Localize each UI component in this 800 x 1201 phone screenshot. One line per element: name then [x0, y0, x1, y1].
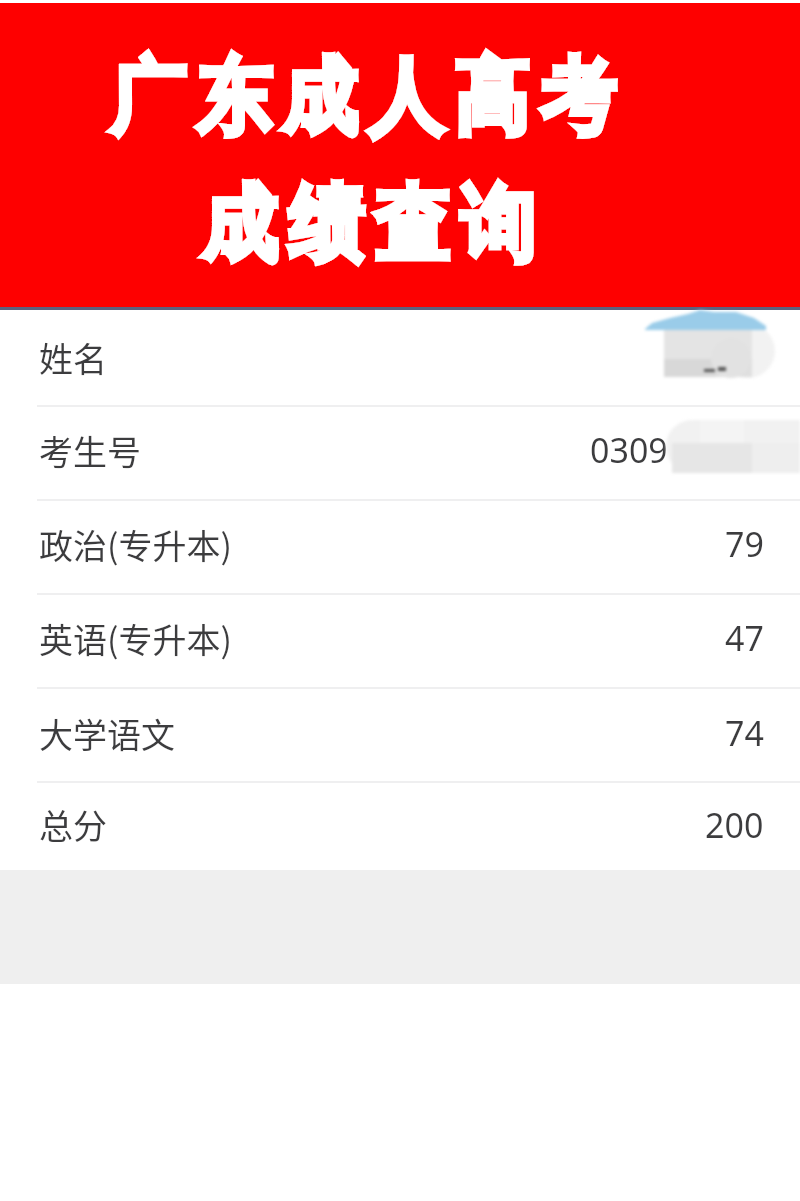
- staticText: 成绩查询: [202, 173, 547, 278]
- staticText: 广东成人高考: [110, 46, 627, 151]
- staticText: 200: [705, 802, 764, 848]
- staticText: 考生号: [39, 426, 141, 475]
- staticText: 总分: [39, 800, 107, 849]
- staticText: 74: [725, 710, 764, 756]
- staticText: 大学语文: [39, 709, 175, 758]
- staticText: 成绩查询: [202, 173, 547, 278]
- button[interactable]: 政治(专升本): [0, 501, 800, 595]
- button[interactable]: 总分: [0, 783, 800, 870]
- staticText: 79: [725, 521, 764, 567]
- staticText: 47: [725, 615, 764, 661]
- button[interactable]: 考生号: [0, 407, 800, 501]
- staticText: 政治(专升本): [39, 520, 232, 569]
- button[interactable]: 英语(专升本): [0, 595, 800, 689]
- staticText: 0309: [590, 427, 668, 473]
- staticText: 英语(专升本): [39, 614, 232, 663]
- staticText: 姓名: [39, 333, 107, 382]
- staticText: 广东成人高考: [110, 46, 627, 151]
- button[interactable]: 大学语文: [0, 689, 800, 783]
- button[interactable]: 姓名: [0, 310, 800, 407]
